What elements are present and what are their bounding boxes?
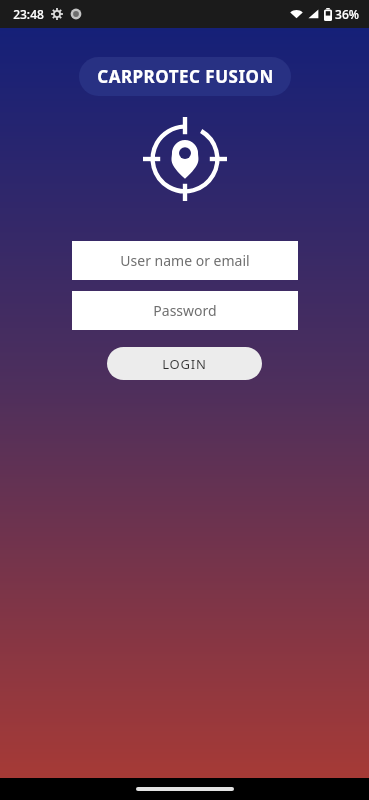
button[interactable]: LOGIN [107, 347, 262, 380]
button[interactable]: CARPROTEC FUSION [79, 57, 291, 96]
other: CarProtec Fusion logo [143, 117, 227, 201]
button[interactable]: User name or email [72, 241, 298, 280]
staticText: 23:48 [13, 6, 44, 22]
staticText: User name or email [120, 251, 250, 270]
staticText: 36% [335, 6, 359, 22]
staticText: Password [153, 301, 217, 320]
staticText: CARPROTEC FUSION [97, 65, 274, 88]
staticText: LOGIN [162, 355, 207, 373]
button[interactable]: Password [72, 291, 298, 330]
